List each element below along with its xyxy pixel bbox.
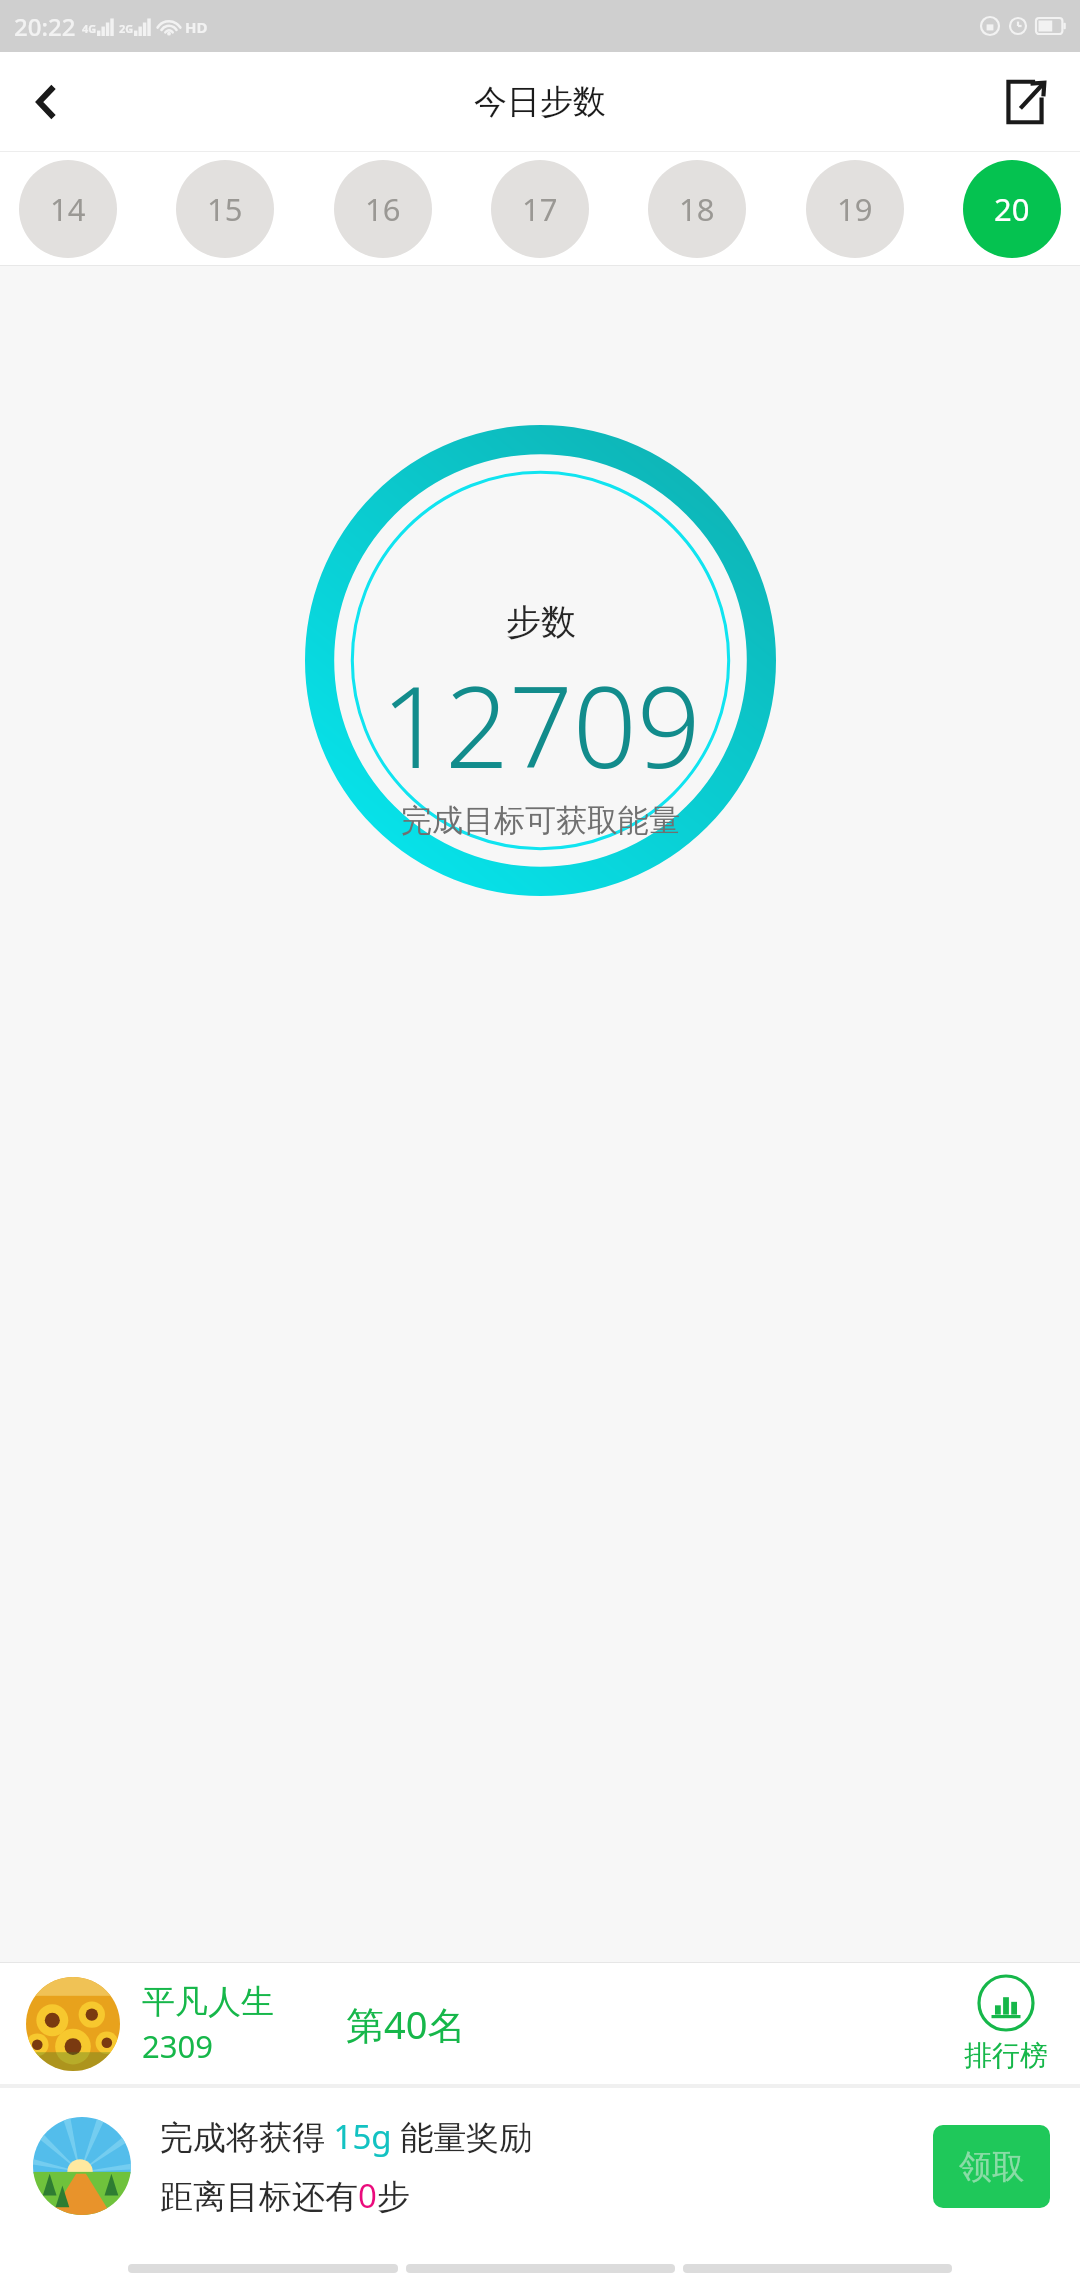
button[interactable]: 15	[176, 160, 274, 258]
staticText: 17	[522, 188, 558, 230]
button[interactable]: 20	[963, 160, 1061, 258]
staticText: 20:22	[14, 10, 76, 43]
staticText: 4G	[82, 21, 97, 36]
staticText: 步数	[506, 600, 576, 644]
staticText: 距离目标还有0步	[160, 2173, 410, 2218]
staticText: 今日步数	[474, 81, 606, 123]
button[interactable]: 19	[806, 160, 904, 258]
staticText: 2309	[142, 2025, 213, 2067]
staticText: 20	[994, 188, 1030, 230]
staticText: 16	[365, 188, 401, 230]
button[interactable]: Share	[992, 69, 1058, 135]
button[interactable]: 16	[334, 160, 432, 258]
button[interactable]: 14	[19, 160, 117, 258]
button[interactable]: 17	[491, 160, 589, 258]
staticText: 12709	[381, 648, 701, 801]
button[interactable]: 18	[648, 160, 746, 258]
button[interactable]: Back	[14, 70, 78, 134]
staticText: 14	[50, 188, 86, 230]
staticText: 第40名	[346, 1998, 466, 2050]
staticText: 完成将获得 15g 能量奖励	[160, 2114, 533, 2159]
button[interactable]: 排行榜	[958, 1974, 1054, 2073]
staticText: 15	[207, 188, 243, 230]
staticText: 平凡人生	[142, 1981, 274, 2023]
button[interactable]: 领取	[933, 2125, 1050, 2208]
button[interactable]: 平凡人生	[0, 1963, 1080, 2084]
staticText: 领取	[959, 2146, 1025, 2188]
staticText: 2G	[119, 21, 134, 36]
staticText: 完成目标可获取能量	[401, 801, 680, 840]
staticText: 19	[837, 188, 873, 230]
staticText: 18	[679, 188, 715, 230]
staticText: HD	[185, 17, 208, 37]
staticText: 排行榜	[964, 2038, 1048, 2073]
